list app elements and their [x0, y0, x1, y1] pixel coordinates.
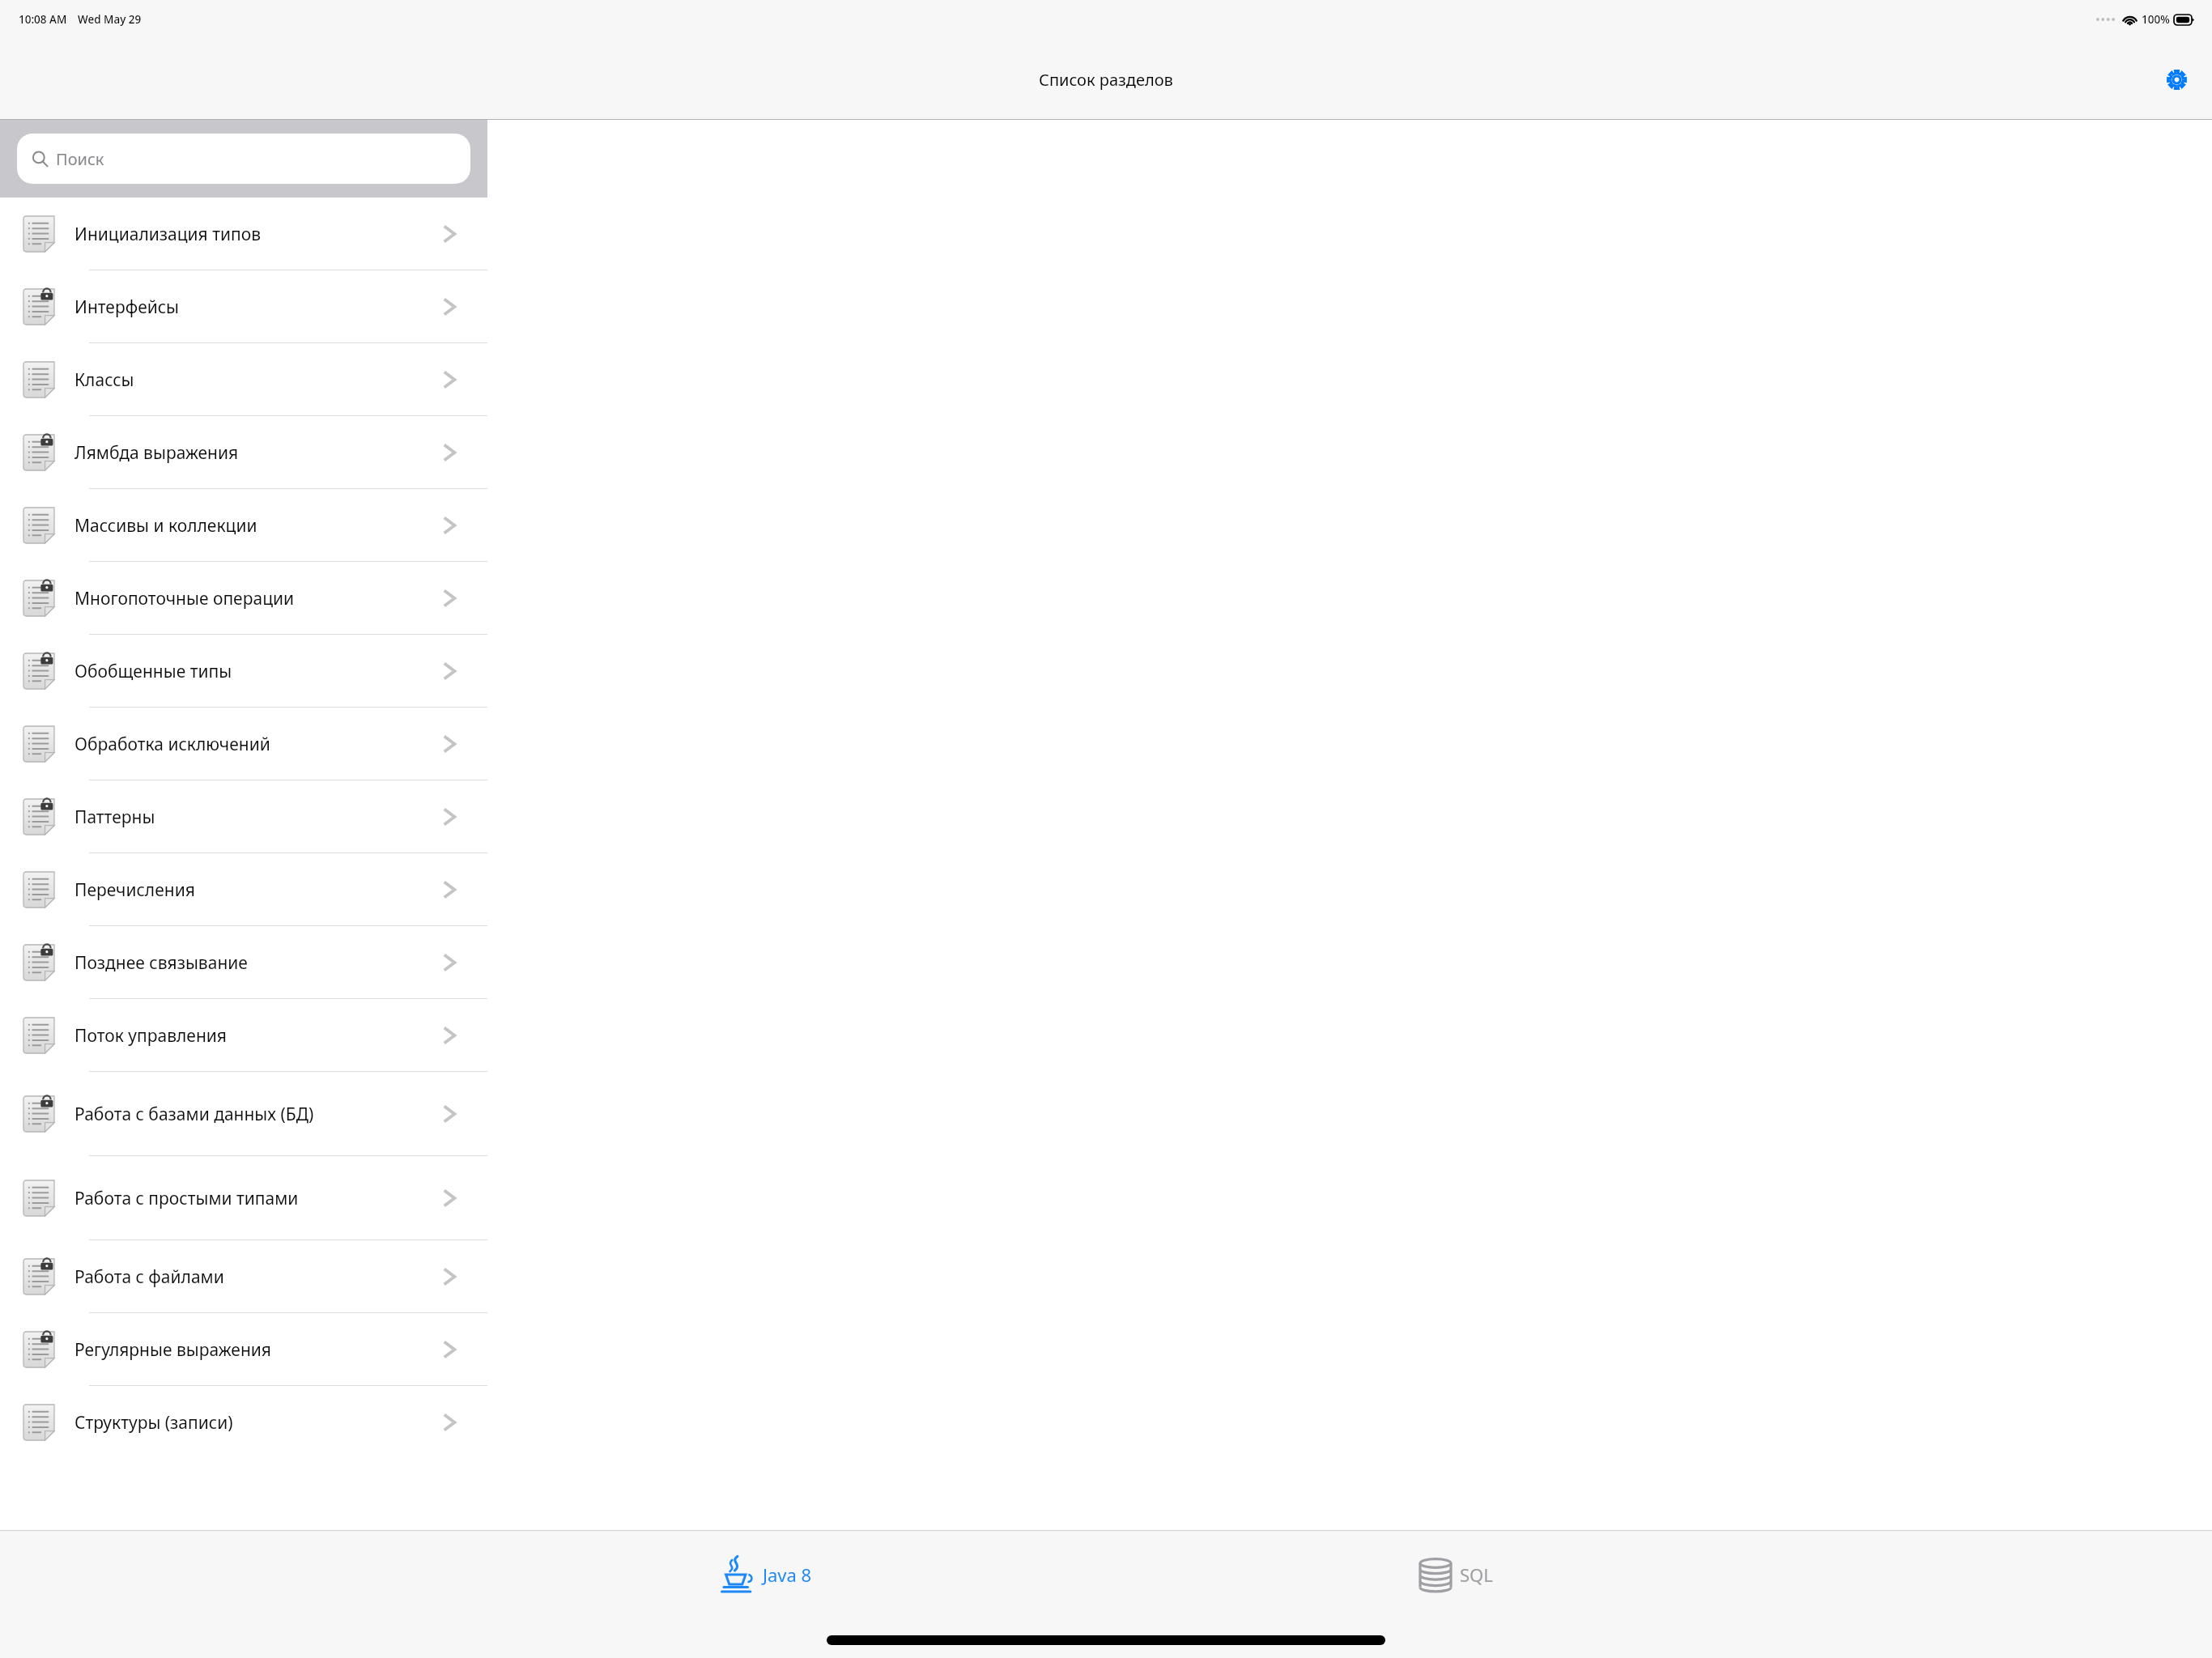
button[interactable]: Поиск	[17, 134, 470, 184]
staticText: Работа с простыми типами	[74, 1187, 435, 1210]
button[interactable]: Обработка исключений	[0, 708, 487, 780]
staticText: Java 8	[763, 1562, 812, 1587]
staticText: Поток управления	[74, 1024, 435, 1048]
staticText: Позднее связывание	[74, 951, 435, 975]
button[interactable]: Массивы и коллекции	[0, 489, 487, 562]
staticText: Поиск	[56, 148, 104, 170]
staticText: Wed May 29	[78, 12, 142, 27]
staticText: Интерфейсы	[74, 295, 435, 319]
button[interactable]: Позднее связывание	[0, 926, 487, 999]
staticText: Классы	[74, 368, 435, 392]
button[interactable]: Java 8	[720, 1540, 812, 1609]
staticText: Работа с файлами	[74, 1265, 435, 1289]
staticText: Многопоточные операции	[74, 587, 435, 610]
staticText: Обобщенные типы	[74, 660, 435, 683]
staticText: Список разделов	[1039, 69, 1173, 91]
staticText: Паттерны	[74, 806, 435, 829]
staticText: Структуры (записи)	[74, 1411, 435, 1435]
button[interactable]: SQL	[1420, 1540, 1493, 1609]
button[interactable]: Регулярные выражения	[0, 1313, 487, 1386]
button[interactable]: Структуры (записи)	[0, 1386, 487, 1459]
button[interactable]: Работа с файлами	[0, 1240, 487, 1313]
button[interactable]: Классы	[0, 343, 487, 416]
staticText: 10:08 AM	[19, 12, 67, 27]
button[interactable]: Обобщенные типы	[0, 635, 487, 708]
staticText: SQL	[1460, 1562, 1493, 1587]
button[interactable]: Многопоточные операции	[0, 562, 487, 635]
staticText: Лямбда выражения	[74, 441, 435, 465]
button[interactable]: Работа с простыми типами	[0, 1156, 487, 1240]
staticText: 100%	[2142, 12, 2170, 27]
button[interactable]: Перечисления	[0, 853, 487, 926]
staticText: Обработка исключений	[74, 733, 435, 756]
button[interactable]: Паттерны	[0, 780, 487, 853]
button[interactable]: Поток управления	[0, 999, 487, 1072]
staticText: Работа с базами данных (БД)	[74, 1103, 435, 1126]
button[interactable]: Интерфейсы	[0, 270, 487, 343]
button[interactable]: Работа с базами данных (БД)	[0, 1072, 487, 1156]
staticText: Массивы и коллекции	[74, 514, 435, 538]
button[interactable]: Инициализация типов	[0, 198, 487, 270]
button[interactable]: Settings	[2154, 57, 2199, 102]
staticText: Инициализация типов	[74, 223, 435, 246]
staticText: Регулярные выражения	[74, 1338, 435, 1362]
staticText: Перечисления	[74, 878, 435, 902]
button[interactable]: Лямбда выражения	[0, 416, 487, 489]
